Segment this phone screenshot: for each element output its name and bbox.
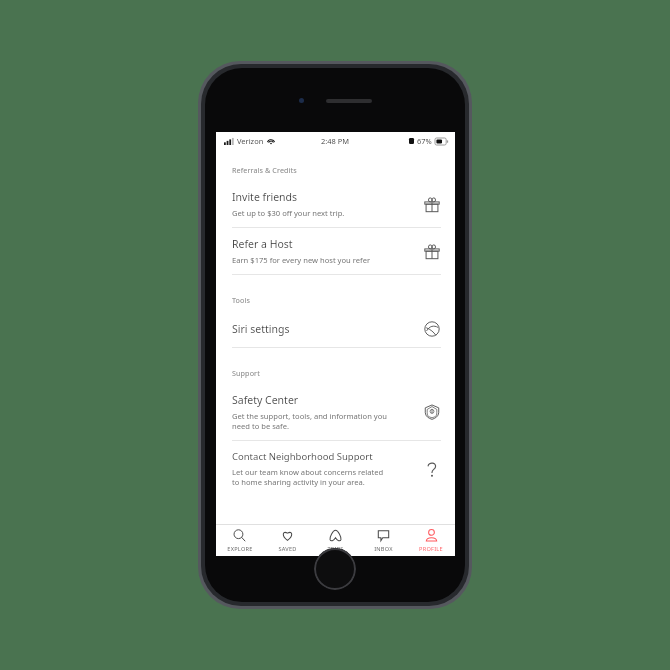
staticText: Get the support, tools, and information … [232,411,387,431]
other: Gift [424,243,440,259]
staticText: 67% [417,136,432,146]
other: Siri settings [424,321,440,337]
staticText: Earn $175 for every new host you refer [232,255,371,265]
staticText: Siri settings [232,322,290,336]
staticText: SAVED [278,545,297,553]
other: Contact support [424,461,440,477]
staticText: Get up to $30 off your next trip. [232,208,345,218]
button[interactable]: Siri settings [216,311,455,347]
button[interactable]: EXPLORE [216,525,263,556]
button[interactable]: Invite friends [216,181,455,227]
staticText: TRIPS [327,545,344,553]
button[interactable]: Safety Center [216,384,455,440]
other: Gift [424,196,440,212]
staticText: 2:48 PM [321,136,350,146]
staticText: Referrals & Credits [232,165,297,175]
staticText: Let our team know about concerns related… [232,467,384,487]
button[interactable]: Refer a Host [216,228,455,274]
staticText: Refer a Host [232,237,293,251]
staticText: Support [232,368,260,378]
button[interactable]: PROFILE [407,525,455,556]
staticText: PROFILE [419,545,443,553]
staticText: Contact Neighborhood Support [232,450,373,463]
button[interactable]: SAVED [263,525,311,556]
button[interactable]: Contact Neighborhood Support [216,441,455,496]
button[interactable]: TRIPS [311,525,359,556]
staticText: Tools [232,295,250,305]
button[interactable]: INBOX [359,525,407,556]
staticText: INBOX [374,545,393,553]
staticText: Invite friends [232,190,298,204]
other: Safety Center [424,404,440,420]
staticText: EXPLORE [227,545,253,553]
staticText: Verizon [237,136,264,146]
staticText: Safety Center [232,393,299,407]
